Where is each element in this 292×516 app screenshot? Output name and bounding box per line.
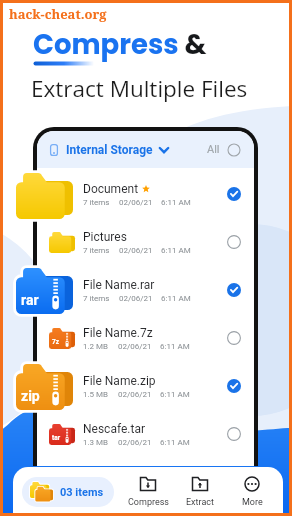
button[interactable]: 7z bbox=[37, 314, 254, 362]
staticText: 6:11 AM bbox=[161, 294, 191, 303]
staticText: 02/06/21 bbox=[118, 438, 152, 447]
button[interactable]: Select Nescafe.tar bbox=[226, 426, 242, 442]
staticText: Extract Multiple Files bbox=[31, 73, 248, 104]
staticText: 1.5 MB bbox=[83, 390, 109, 399]
staticText: 7 items bbox=[83, 246, 110, 255]
button[interactable]: Select Document bbox=[226, 186, 242, 202]
staticText: Internal Storage bbox=[66, 143, 153, 157]
button[interactable]: rar file bbox=[13, 265, 75, 317]
staticText: Compress bbox=[128, 497, 169, 508]
staticText: Pictures bbox=[83, 230, 127, 244]
button[interactable]: zip file bbox=[13, 361, 75, 413]
button[interactable]: Pictures bbox=[37, 218, 254, 266]
staticText: Extract bbox=[186, 497, 214, 508]
staticText: 1.3 MB bbox=[83, 438, 109, 447]
staticText: 6:11 AM bbox=[160, 390, 190, 399]
button[interactable]: File Name.rar bbox=[37, 266, 254, 314]
staticText: 02/06/21 bbox=[119, 198, 153, 207]
staticText: 6:11 AM bbox=[160, 438, 190, 447]
staticText: hack-cheat.org bbox=[9, 5, 107, 23]
staticText: File Name.zip bbox=[83, 374, 156, 388]
button[interactable]: Select all bbox=[227, 143, 241, 157]
staticText: 7 items bbox=[83, 294, 110, 303]
staticText: All bbox=[207, 143, 220, 156]
staticText: 6:11 AM bbox=[161, 198, 191, 207]
button[interactable]: More bbox=[229, 475, 275, 508]
staticText: 02/06/21 bbox=[118, 342, 152, 351]
button[interactable]: Document bbox=[37, 170, 254, 218]
button[interactable]: File Name.zip bbox=[37, 362, 254, 410]
staticText: 1.2 MB bbox=[83, 342, 109, 351]
staticText: 03 items bbox=[60, 486, 104, 499]
button[interactable]: Select File Name.rar bbox=[226, 282, 242, 298]
staticText: More bbox=[242, 497, 263, 508]
button[interactable]: Internal Storage bbox=[37, 131, 254, 168]
staticText: 02/06/21 bbox=[118, 390, 152, 399]
button[interactable]: Select Pictures bbox=[226, 234, 242, 250]
staticText: 02/06/21 bbox=[119, 294, 153, 303]
staticText: 6:11 AM bbox=[160, 342, 190, 351]
button[interactable]: Select File Name.7z bbox=[226, 330, 242, 346]
staticText: zip bbox=[21, 388, 40, 404]
button[interactable]: Select File Name.zip bbox=[226, 378, 242, 394]
staticText: File Name.rar bbox=[83, 278, 155, 292]
button[interactable]: Compress bbox=[125, 475, 171, 508]
staticText: 7 items bbox=[83, 198, 110, 207]
button[interactable]: folder file bbox=[13, 170, 75, 222]
staticText: tar bbox=[52, 434, 61, 442]
staticText: File Name.7z bbox=[83, 326, 153, 340]
staticText: 6:11 AM bbox=[161, 246, 191, 255]
staticText: rar bbox=[21, 292, 39, 308]
button[interactable]: tar bbox=[37, 410, 254, 458]
button[interactable]: 03 items bbox=[22, 477, 114, 507]
staticText: Nescafe.tar bbox=[83, 422, 146, 436]
staticText: Document bbox=[83, 182, 139, 196]
staticText: 02/06/21 bbox=[119, 246, 153, 255]
button[interactable]: Extract bbox=[177, 475, 223, 508]
staticText: Compress & bbox=[33, 25, 207, 63]
staticText: 7z bbox=[52, 338, 60, 346]
